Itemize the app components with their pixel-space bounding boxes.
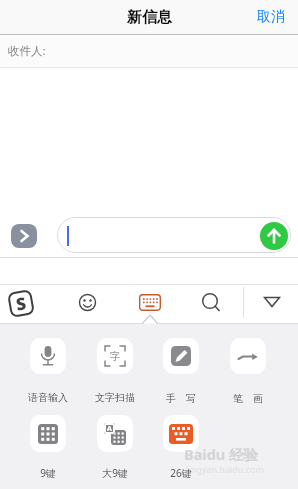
staticText: 大9键 xyxy=(102,466,128,480)
staticText: 取消 xyxy=(257,8,285,26)
button[interactable] xyxy=(163,338,199,374)
staticText: 26键 xyxy=(170,466,192,480)
button[interactable] xyxy=(230,338,266,374)
button[interactable]: 字 xyxy=(97,338,133,374)
staticText: 9键 xyxy=(40,466,56,480)
button[interactable]: S xyxy=(7,289,35,318)
staticText: 收件人: xyxy=(8,43,46,59)
staticText: S xyxy=(14,291,28,316)
staticText: 手 写 xyxy=(166,391,196,405)
button[interactable] xyxy=(139,294,161,311)
button[interactable] xyxy=(57,217,291,253)
button[interactable] xyxy=(163,415,199,452)
staticText: 语音输入 xyxy=(28,391,68,404)
staticText: A xyxy=(107,424,112,434)
button[interactable] xyxy=(30,415,66,452)
staticText: Baidu 经验 xyxy=(184,444,259,464)
button[interactable] xyxy=(78,293,97,312)
staticText: 新信息 xyxy=(127,8,172,27)
staticText: 字 xyxy=(110,350,121,363)
button[interactable] xyxy=(263,296,281,308)
staticText: 文字扫描 xyxy=(95,391,135,404)
button[interactable] xyxy=(30,338,66,374)
button[interactable]: 收件人: xyxy=(0,35,298,67)
staticText: jingyan.baidu.com xyxy=(186,463,264,475)
button[interactable]: 取消 xyxy=(257,8,298,26)
button[interactable]: A xyxy=(97,415,133,452)
button[interactable] xyxy=(201,292,221,313)
button[interactable] xyxy=(11,224,37,248)
staticText: 笔 画 xyxy=(233,391,263,405)
button[interactable] xyxy=(260,222,288,250)
